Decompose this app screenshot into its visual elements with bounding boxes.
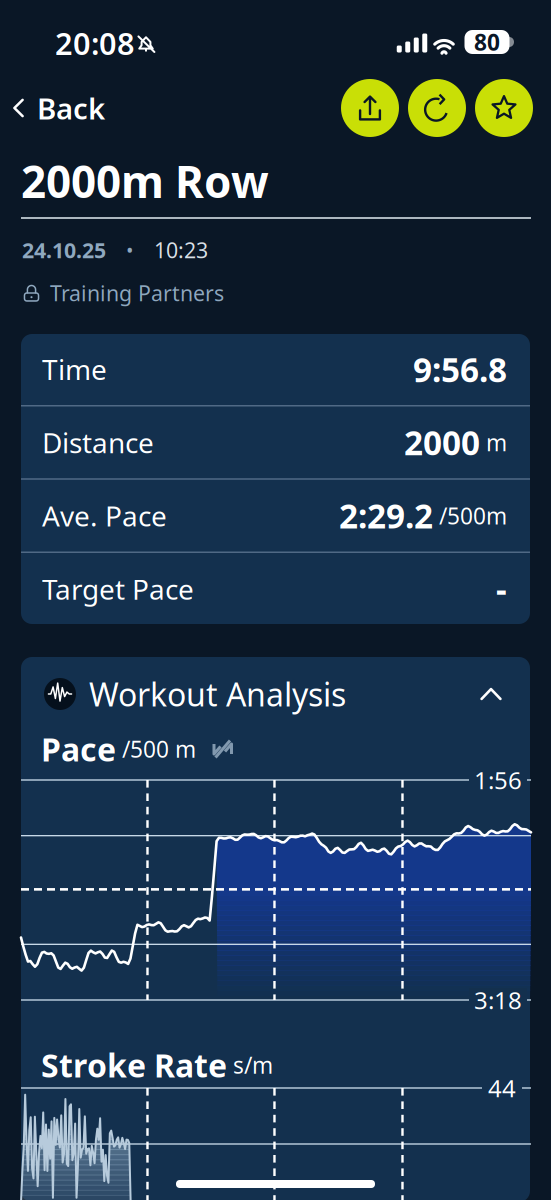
staticText: m xyxy=(480,427,507,457)
button[interactable]: Favourite xyxy=(475,79,533,137)
staticText: 20:08 xyxy=(55,23,135,63)
staticText: 2000 xyxy=(404,420,480,465)
staticText: Pace xyxy=(41,728,116,770)
staticText: 2000m Row xyxy=(21,152,269,210)
staticText: Ave. Pace xyxy=(42,497,167,534)
staticText: Stroke Rate xyxy=(41,1044,227,1086)
button[interactable]: Repeat workout xyxy=(408,79,466,137)
staticText: Distance xyxy=(42,424,154,461)
staticText: 80 xyxy=(474,27,500,57)
staticText: /500 m xyxy=(116,734,196,764)
staticText: Training Partners xyxy=(50,279,224,307)
staticText: • xyxy=(106,237,154,263)
staticText: /500m xyxy=(433,500,507,531)
staticText: 9:56.8 xyxy=(413,347,507,391)
staticText: 10:23 xyxy=(154,236,208,264)
staticText: 1:56 xyxy=(474,764,522,796)
button[interactable]: Collapse xyxy=(471,678,511,709)
staticText: 44 xyxy=(488,1072,516,1104)
staticText: - xyxy=(496,567,507,611)
staticText: Time xyxy=(42,351,107,388)
staticText: Workout Analysis xyxy=(89,673,346,715)
staticText: 2:29.2 xyxy=(339,493,433,538)
button[interactable]: Share xyxy=(341,79,399,137)
staticText: Target Pace xyxy=(42,570,194,607)
staticText: Back xyxy=(37,88,105,127)
staticText: s/m xyxy=(227,1050,273,1080)
button[interactable]: Back xyxy=(0,79,119,136)
staticText: 24.10.25 xyxy=(22,236,106,264)
staticText: 3:18 xyxy=(474,984,522,1016)
